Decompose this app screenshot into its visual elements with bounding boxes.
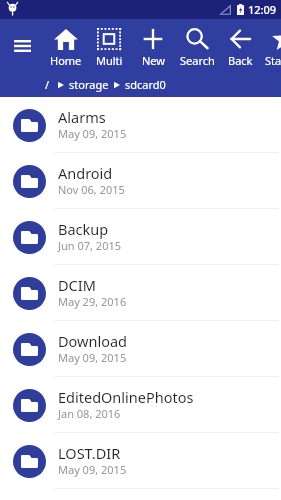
- button[interactable]: Menu: [5, 29, 39, 63]
- staticText: LOST.DIR: [58, 443, 121, 463]
- staticText: EditedOnlinePhotos: [58, 387, 194, 407]
- button[interactable]: EditedOnlinePhotos: [0, 377, 281, 433]
- staticText: Back: [228, 53, 253, 68]
- staticText: Search: [180, 53, 215, 68]
- staticText: storage: [69, 77, 109, 92]
- button[interactable]: DCIM: [0, 265, 281, 321]
- button[interactable]: Download: [0, 321, 281, 377]
- staticText: Android: [58, 163, 113, 183]
- button[interactable]: Multi: [84, 28, 134, 68]
- button[interactable]: Back: [215, 28, 265, 68]
- button[interactable]: storage: [69, 77, 109, 92]
- staticText: /: [45, 77, 50, 92]
- button[interactable]: LOST.DIR: [0, 433, 281, 489]
- button[interactable]: New: [128, 28, 178, 68]
- staticText: Jun 07, 2015: [58, 238, 122, 253]
- staticText: May 09, 2015: [58, 350, 127, 365]
- staticText: 12:09: [248, 2, 277, 17]
- staticText: Download: [58, 331, 127, 351]
- staticText: Home: [50, 53, 82, 68]
- staticText: Nov 06, 2015: [58, 182, 125, 197]
- staticText: Backup: [58, 219, 109, 239]
- staticText: May 09, 2015: [58, 126, 127, 141]
- staticText: May 29, 2016: [58, 294, 127, 309]
- staticText: Starred: [265, 53, 281, 68]
- button[interactable]: Home: [41, 28, 91, 68]
- button[interactable]: Android: [0, 153, 281, 209]
- staticText: New: [142, 53, 165, 68]
- button[interactable]: Alarms: [0, 97, 281, 153]
- staticText: Jan 08, 2016: [58, 406, 121, 421]
- button[interactable]: sdcard0: [125, 77, 166, 92]
- button[interactable]: /: [45, 77, 50, 92]
- staticText: sdcard0: [125, 77, 166, 92]
- staticText: Multi: [96, 53, 123, 68]
- staticText: May 09, 2015: [58, 462, 127, 477]
- button[interactable]: Starred: [259, 28, 281, 68]
- staticText: Alarms: [58, 107, 106, 127]
- button[interactable]: Backup: [0, 209, 281, 265]
- button[interactable]: Search: [172, 28, 222, 68]
- staticText: DCIM: [58, 275, 96, 295]
